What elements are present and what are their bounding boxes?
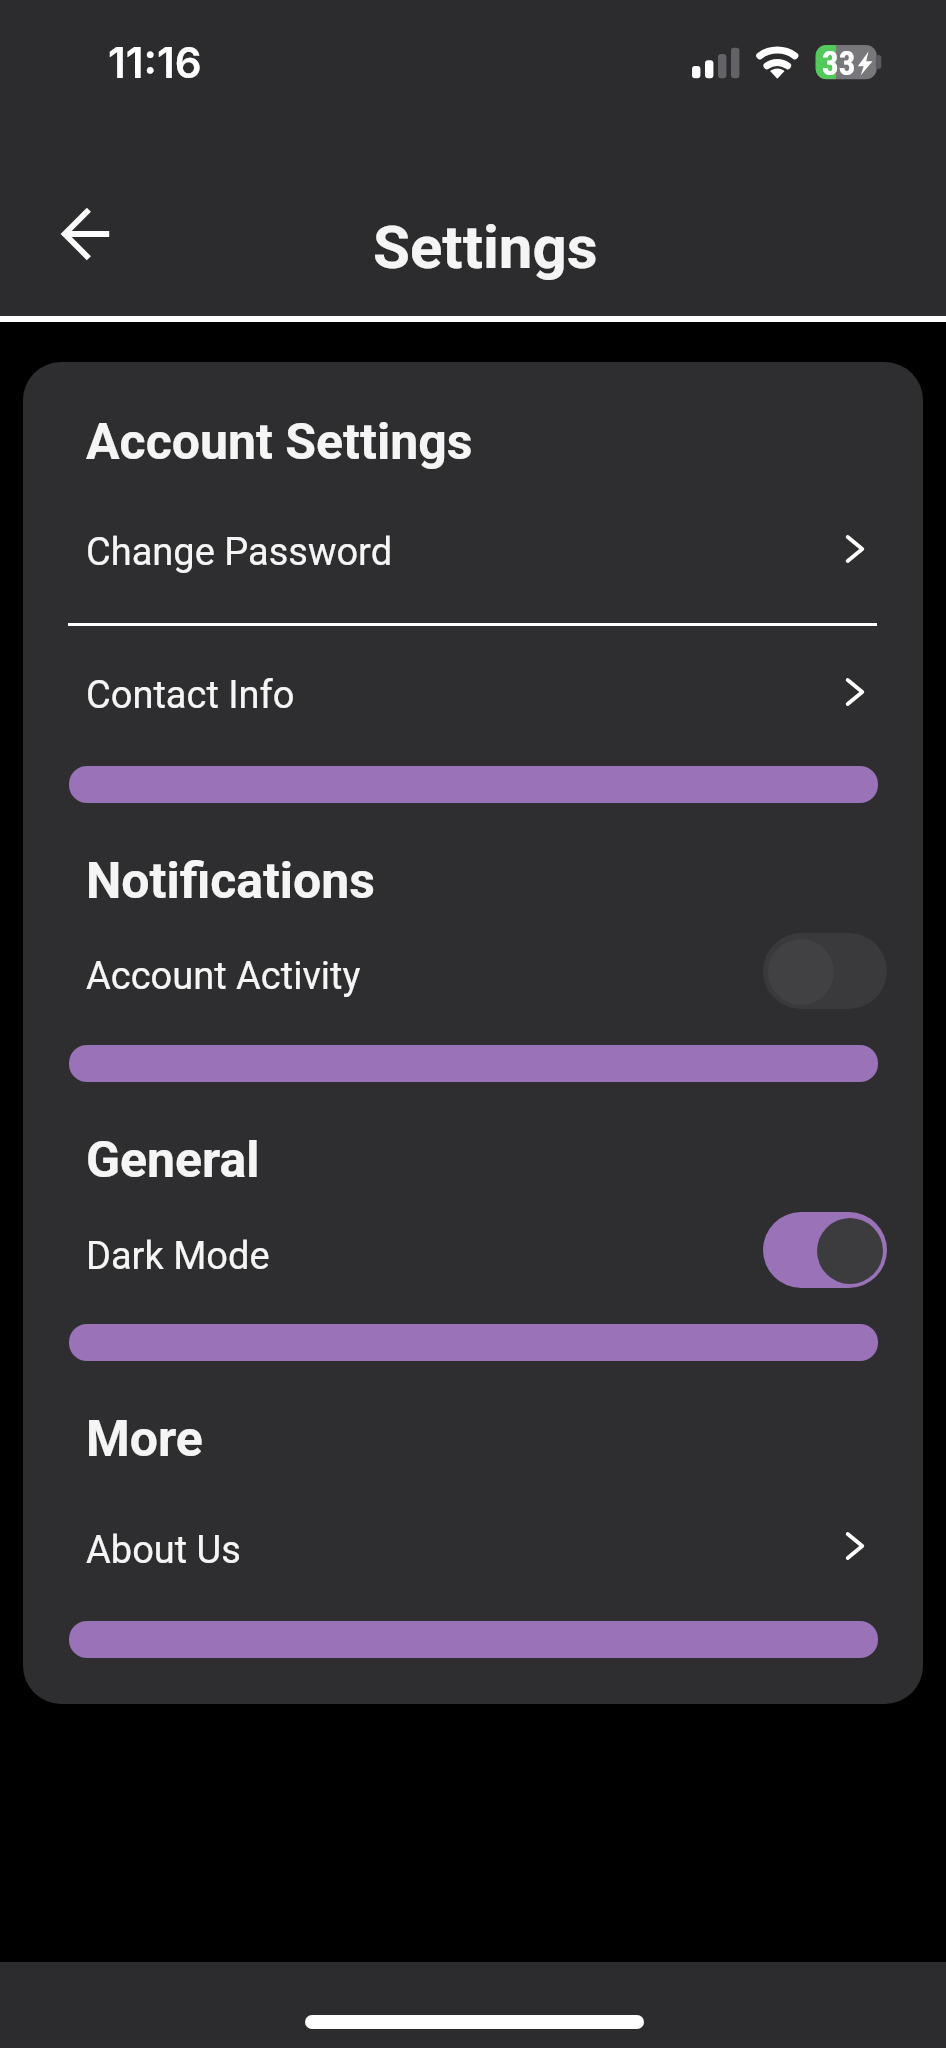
button[interactable]: Back — [29, 179, 139, 289]
staticText: About Us — [86, 1528, 241, 1573]
staticText: 11:16 — [108, 37, 202, 88]
staticText: Account Settings — [86, 413, 473, 472]
staticText: General — [86, 1131, 260, 1190]
button[interactable]: Account Activity switch, off — [763, 933, 887, 1009]
button[interactable]: Account Activity, off — [68, 930, 877, 1010]
button[interactable]: Change Password — [68, 506, 877, 594]
staticText: Dark Mode — [86, 1234, 270, 1279]
button[interactable]: About Us — [68, 1503, 877, 1591]
button[interactable]: Contact Info — [68, 650, 877, 738]
staticText: Change Password — [86, 530, 393, 575]
staticText: Settings — [373, 212, 598, 282]
staticText: More — [86, 1410, 203, 1469]
staticText: Notifications — [86, 852, 376, 911]
staticText: 33 — [822, 44, 856, 83]
button[interactable]: Dark Mode, on — [68, 1210, 877, 1290]
staticText: Contact Info — [86, 673, 295, 718]
button[interactable]: Dark Mode switch, on — [763, 1212, 887, 1288]
staticText: Account Activity — [86, 954, 361, 999]
